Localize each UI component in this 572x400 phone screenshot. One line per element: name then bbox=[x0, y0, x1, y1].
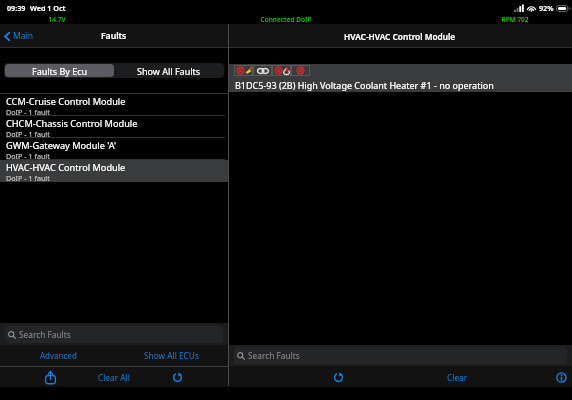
staticText: Main bbox=[13, 30, 34, 42]
staticText: DoIP - 1 fault bbox=[6, 151, 50, 160]
button[interactable]: Clear fault bbox=[291, 65, 310, 76]
staticText: 14.7V bbox=[27, 15, 87, 24]
staticText: 09:39 bbox=[7, 3, 26, 13]
button[interactable]: Search Faults bbox=[5, 326, 223, 343]
staticText: Faults bbox=[101, 30, 127, 42]
staticText: Advanced bbox=[40, 350, 77, 361]
staticText: Show All Faults bbox=[137, 65, 201, 77]
staticText: HVAC-HVAC Control Module bbox=[6, 161, 126, 174]
button[interactable]: Share bbox=[36, 367, 65, 387]
button[interactable]: Link bbox=[253, 65, 272, 76]
staticText: Show All ECUs bbox=[144, 350, 199, 361]
button[interactable]: Advanced bbox=[28, 345, 88, 366]
button[interactable]: Refresh bbox=[163, 367, 192, 387]
staticText: DoIP - 1 fault bbox=[6, 129, 50, 138]
button[interactable]: Clear bbox=[437, 367, 477, 387]
staticText: Wed 1 Oct bbox=[30, 3, 66, 13]
button[interactable]: Main bbox=[4, 30, 34, 42]
staticText: Search Faults bbox=[248, 350, 300, 361]
button[interactable]: Info bbox=[546, 367, 572, 387]
staticText: Clear bbox=[447, 372, 468, 383]
button[interactable]: HVAC-HVAC Control Module bbox=[0, 160, 228, 182]
staticText: CCM-Cruise Control Module bbox=[6, 95, 126, 108]
staticText: HVAC-HVAC Control Module bbox=[344, 31, 456, 42]
staticText: RPM 702 bbox=[485, 15, 545, 24]
button[interactable]: CHCM-Chassis Control Module bbox=[0, 116, 228, 138]
button[interactable]: Search Faults bbox=[234, 347, 567, 364]
staticText: 92% bbox=[539, 3, 554, 13]
button[interactable]: Clear fluid faults bbox=[272, 65, 291, 76]
staticText: Search Faults bbox=[19, 329, 71, 340]
staticText: Faults By Ecu bbox=[32, 65, 88, 77]
staticText: DoIP - 1 fault bbox=[6, 173, 50, 182]
button[interactable]: Refresh bbox=[323, 367, 353, 387]
button[interactable]: Show All ECUs bbox=[136, 345, 206, 366]
staticText: Connected DoIP bbox=[246, 15, 326, 24]
staticText: CHCM-Chassis Control Module bbox=[6, 117, 138, 130]
staticText: GWM-Gateway Module 'A' bbox=[6, 139, 117, 152]
button[interactable]: CCM-Cruise Control Module bbox=[0, 94, 228, 116]
button[interactable]: Show All Faults bbox=[114, 64, 223, 77]
button[interactable]: GWM-Gateway Module 'A' bbox=[0, 138, 228, 160]
staticText: Clear All bbox=[98, 372, 130, 383]
staticText: DoIP - 1 fault bbox=[6, 107, 50, 116]
button[interactable]: Clear all faults bbox=[234, 65, 253, 76]
button[interactable]: Faults By Ecu bbox=[5, 64, 114, 77]
staticText: B1DC5-93 (2B) High Voltage Coolant Heate… bbox=[235, 79, 494, 91]
button[interactable]: Clear All bbox=[93, 367, 134, 387]
